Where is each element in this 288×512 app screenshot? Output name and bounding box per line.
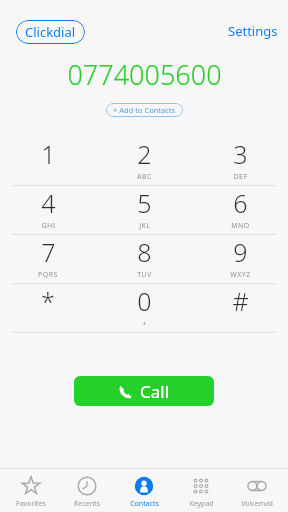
- button[interactable]: + Add to Contacts: [106, 103, 183, 117]
- staticText: Settings: [228, 22, 278, 40]
- button[interactable]: Recents: [61, 468, 113, 512]
- button[interactable]: Voicemail: [231, 468, 283, 512]
- staticText: 3: [233, 137, 248, 171]
- staticText: 8: [137, 235, 152, 269]
- staticText: Keypad: [189, 499, 214, 509]
- staticText: + Add to Contacts: [113, 105, 176, 115]
- button[interactable]: 2: [96, 137, 192, 182]
- staticText: PQRS: [38, 270, 58, 280]
- staticText: 2: [137, 137, 152, 171]
- button[interactable]: 8: [96, 235, 192, 280]
- staticText: 0: [137, 284, 152, 318]
- staticText: Favorites: [16, 499, 46, 509]
- staticText: WXYZ: [230, 270, 251, 280]
- staticText: JKL: [139, 221, 151, 231]
- staticText: 4: [41, 186, 56, 220]
- staticText: DEF: [233, 172, 248, 182]
- staticText: Recents: [74, 499, 100, 509]
- button[interactable]: Settings: [218, 20, 288, 42]
- button[interactable]: 0: [96, 284, 192, 329]
- staticText: MNO: [231, 221, 250, 231]
- staticText: 7: [41, 235, 56, 269]
- staticText: Voicemail: [241, 499, 273, 509]
- staticText: ABC: [137, 172, 152, 182]
- staticText: 5: [137, 186, 152, 220]
- button[interactable]: 4: [0, 186, 96, 231]
- button[interactable]: Clickdial: [16, 20, 85, 44]
- staticText: 6: [233, 186, 248, 220]
- staticText: +: [142, 319, 147, 329]
- staticText: TUV: [137, 270, 152, 280]
- button[interactable]: 6: [192, 186, 288, 231]
- button[interactable]: Keypad: [175, 468, 227, 512]
- staticText: Clickdial: [25, 23, 76, 41]
- button[interactable]: Contacts: [118, 468, 170, 512]
- staticText: *: [41, 284, 55, 318]
- button[interactable]: Favorites: [5, 468, 57, 512]
- button[interactable]: 5: [96, 186, 192, 231]
- button[interactable]: 9: [192, 235, 288, 280]
- staticText: 0774005600: [67, 56, 222, 93]
- button[interactable]: #: [192, 284, 288, 326]
- button[interactable]: 1: [0, 137, 96, 179]
- button[interactable]: 3: [192, 137, 288, 182]
- staticText: GHI: [41, 221, 56, 231]
- staticText: Call: [140, 380, 170, 403]
- staticText: #: [232, 284, 249, 318]
- button[interactable]: Call: [74, 376, 214, 406]
- button[interactable]: 7: [0, 235, 96, 280]
- staticText: Contacts: [130, 499, 159, 509]
- staticText: 9: [233, 235, 248, 269]
- staticText: 1: [41, 137, 56, 171]
- button[interactable]: *: [0, 284, 96, 326]
